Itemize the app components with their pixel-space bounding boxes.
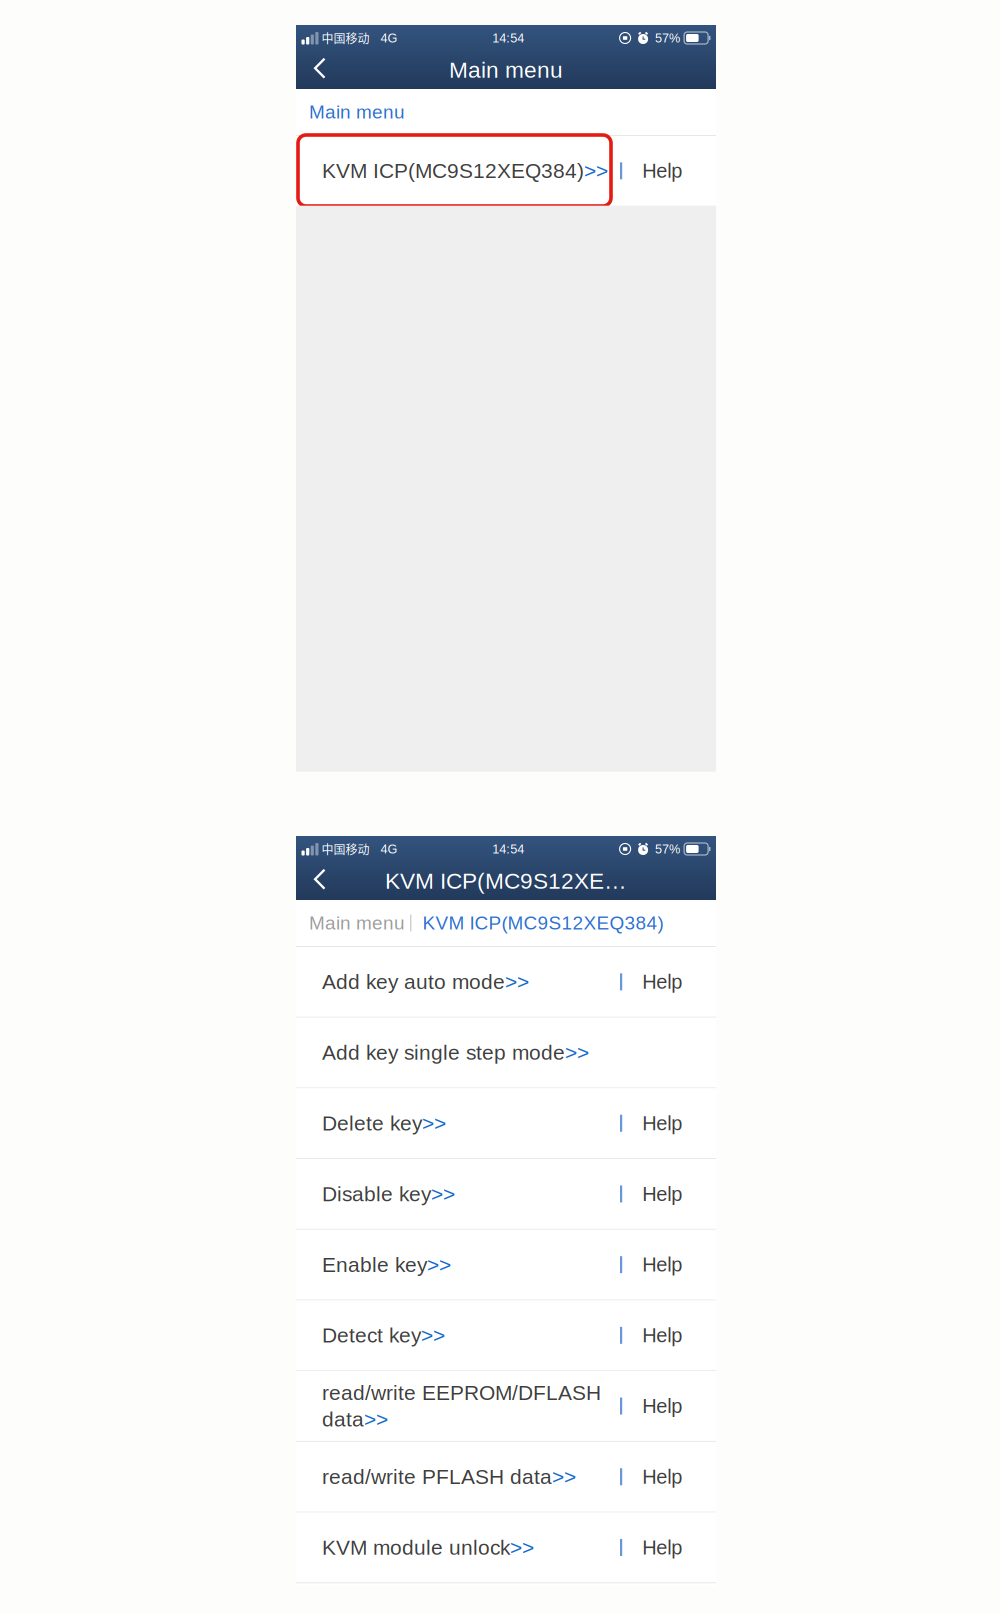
button[interactable]: Main menu <box>296 900 405 946</box>
button[interactable]: Help <box>620 1371 716 1441</box>
button[interactable]: Add key single step mode>> <box>296 1018 620 1087</box>
button[interactable]: Disable key>> <box>296 1159 620 1229</box>
button[interactable]: Main menu <box>296 89 415 135</box>
staticText: KVM ICP(MC9S12XEQ384)>> <box>322 159 608 183</box>
button[interactable]: KVM module unlock>> <box>296 1513 620 1582</box>
staticText: Add key auto mode>> <box>322 970 529 994</box>
button[interactable]: Help <box>620 1442 716 1512</box>
staticText: Help <box>642 1536 682 1559</box>
staticText: 4G <box>380 842 397 856</box>
staticText: 14:54 <box>492 31 524 45</box>
staticText: Help <box>642 971 682 993</box>
button[interactable]: Delete key>> <box>296 1088 620 1158</box>
staticText: read/write PFLASH data>> <box>322 1465 576 1488</box>
button[interactable]: Help <box>620 1159 716 1229</box>
staticText: 57% <box>655 842 680 856</box>
staticText: 4G <box>380 31 397 45</box>
staticText: Main menu <box>449 57 563 83</box>
staticText: 中国移动 <box>321 29 369 47</box>
staticText: Help <box>642 1183 682 1205</box>
staticText: Delete key>> <box>322 1112 446 1135</box>
staticText: Main menu <box>309 912 405 934</box>
button[interactable]: Back <box>296 51 338 89</box>
button[interactable]: Help <box>620 1230 716 1299</box>
button[interactable]: Help <box>620 1300 716 1370</box>
staticText: KVM ICP(MC9S12XE… <box>385 868 627 894</box>
staticText: read/write EEPROM/DFLASH data>> <box>322 1381 601 1431</box>
staticText: 57% <box>655 31 680 45</box>
staticText: 14:54 <box>492 842 524 856</box>
button[interactable]: read/write PFLASH data>> <box>296 1442 620 1512</box>
staticText: KVM ICP(MC9S12XEQ384) <box>422 912 663 934</box>
staticText: Detect key>> <box>322 1324 445 1347</box>
staticText: Enable key>> <box>322 1253 451 1276</box>
button[interactable]: Detect key>> <box>296 1300 620 1370</box>
staticText: Help <box>642 160 682 182</box>
button[interactable]: Help <box>620 1088 716 1158</box>
button[interactable]: KVM ICP(MC9S12XEQ384)>> <box>296 136 620 206</box>
staticText: Help <box>642 1466 682 1488</box>
staticText: Help <box>642 1112 682 1134</box>
staticText: Disable key>> <box>322 1182 455 1206</box>
staticText: 中国移动 <box>321 840 369 858</box>
staticText: KVM module unlock>> <box>322 1536 534 1559</box>
staticText: Help <box>642 1395 682 1417</box>
staticText: Add key single step mode>> <box>322 1041 589 1064</box>
staticText: Help <box>642 1253 682 1276</box>
button[interactable]: KVM ICP(MC9S12XEQ384) <box>411 900 673 946</box>
button[interactable]: Enable key>> <box>296 1230 620 1299</box>
button[interactable]: Add key auto mode>> <box>296 947 620 1017</box>
staticText: Main menu <box>309 101 405 123</box>
button[interactable]: read/write EEPROM/DFLASH data>> <box>296 1371 620 1441</box>
button[interactable]: Help <box>620 947 716 1017</box>
staticText: Help <box>642 1324 682 1346</box>
button[interactable]: Back <box>296 862 338 900</box>
button[interactable]: Help <box>620 1513 716 1582</box>
button[interactable]: Help <box>620 136 716 206</box>
